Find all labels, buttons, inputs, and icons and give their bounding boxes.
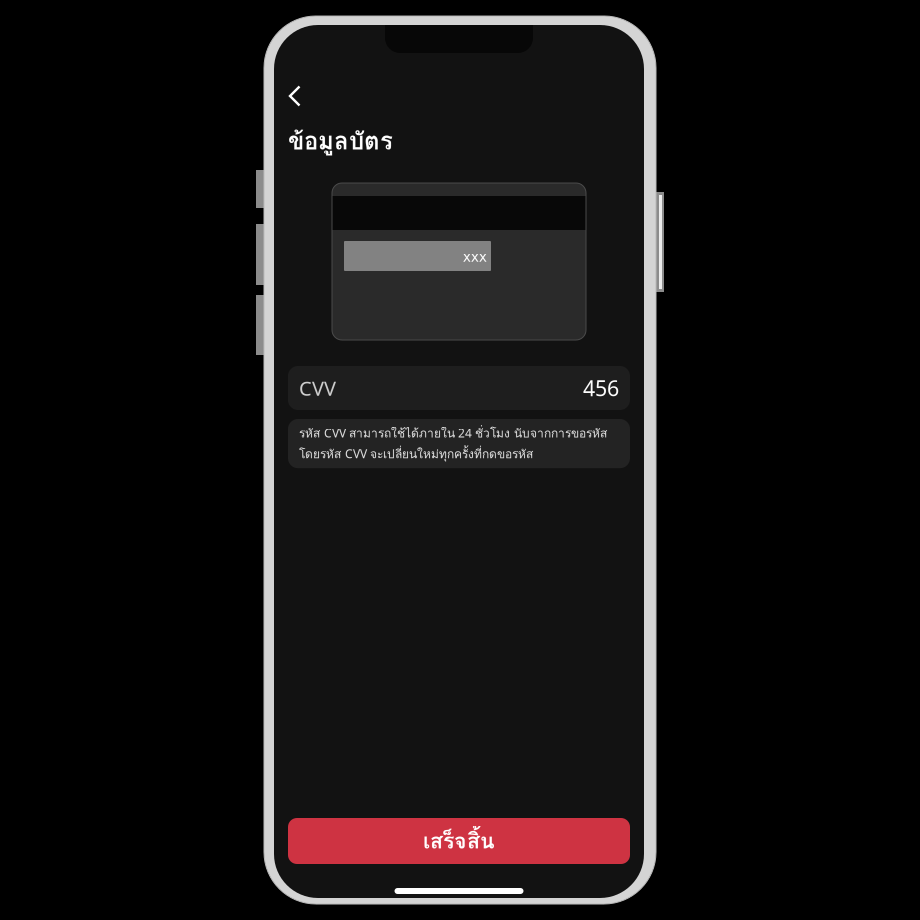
staticText: CVV [299, 375, 336, 401]
staticText: xxx [463, 246, 487, 266]
staticText: 456 [583, 374, 619, 402]
staticText: รหัส CVV สามารถใช้ได้ภายใน 24 ชั่วโมง นั… [299, 424, 607, 443]
button[interactable]: Back [288, 84, 332, 108]
staticText: เสร็จสิ้น [423, 824, 495, 858]
staticText: ข้อมูลบัตร [288, 122, 393, 160]
button[interactable]: CVV [288, 366, 630, 410]
staticText: โดยรหัส CVV จะเปลี่ยนใหม่ทุกครั้งที่กดขอ… [299, 445, 533, 463]
button[interactable]: เสร็จสิ้น [288, 818, 630, 864]
